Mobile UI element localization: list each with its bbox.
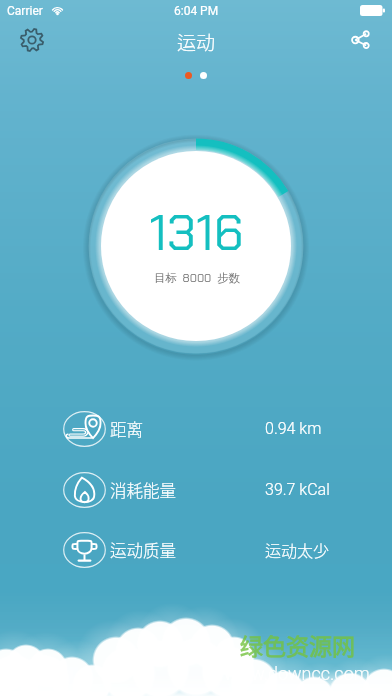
staticText: 消耗能量 bbox=[110, 478, 176, 502]
staticText: Carrier bbox=[7, 4, 43, 18]
button[interactable] bbox=[185, 72, 192, 79]
button[interactable]: Share bbox=[339, 18, 382, 61]
button[interactable] bbox=[200, 72, 207, 79]
staticText: 运动太少 bbox=[265, 538, 330, 561]
staticText: 6:04 PM bbox=[174, 4, 219, 18]
staticText: 绿色资源网 bbox=[240, 628, 355, 661]
button[interactable]: 运动质量 bbox=[0, 529, 392, 570]
staticText: 0.94 km bbox=[265, 419, 322, 438]
button[interactable]: 消耗能量 bbox=[0, 469, 392, 510]
staticText: www.downcc.com bbox=[224, 663, 370, 684]
staticText: 39.7 kCal bbox=[265, 480, 330, 499]
button[interactable]: Settings bbox=[10, 18, 53, 61]
staticText: 距离 bbox=[110, 417, 143, 441]
staticText: 1316 bbox=[149, 200, 244, 265]
staticText: 运动 bbox=[177, 28, 216, 56]
staticText: 运动质量 bbox=[110, 538, 176, 562]
button[interactable]: 距离 bbox=[0, 408, 392, 449]
staticText: 目标 8000 步数 bbox=[154, 271, 240, 286]
